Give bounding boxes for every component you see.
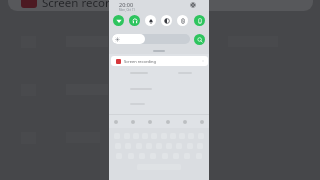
- button[interactable]: Quick setting toggle: [161, 15, 172, 26]
- staticText: 20:00: [119, 1, 134, 8]
- button[interactable]: Toolbar action: [166, 120, 170, 124]
- button[interactable]: Brightness: [112, 34, 190, 44]
- button[interactable]: Toolbar action: [183, 120, 187, 124]
- button[interactable]: Quick setting toggle: [129, 15, 140, 26]
- button[interactable]: Quick setting toggle: [194, 15, 205, 26]
- staticText: Screen recording: [124, 59, 156, 64]
- button[interactable]: Quick setting toggle: [177, 15, 188, 26]
- button[interactable]: Toolbar action: [114, 120, 118, 124]
- button[interactable]: Toolbar action: [131, 120, 135, 124]
- staticText: Mon, Oct 11: [119, 8, 135, 12]
- button[interactable]: Search: [194, 34, 205, 45]
- button[interactable]: Toolbar action: [200, 120, 204, 124]
- button[interactable]: Screen recording: [111, 56, 208, 66]
- staticText: Screen recording: [42, 0, 134, 11]
- button[interactable]: Quick setting toggle: [113, 15, 124, 26]
- button[interactable]: Quick setting toggle: [145, 15, 156, 26]
- button[interactable]: Settings: [190, 2, 196, 8]
- button[interactable]: Toolbar action: [148, 120, 152, 124]
